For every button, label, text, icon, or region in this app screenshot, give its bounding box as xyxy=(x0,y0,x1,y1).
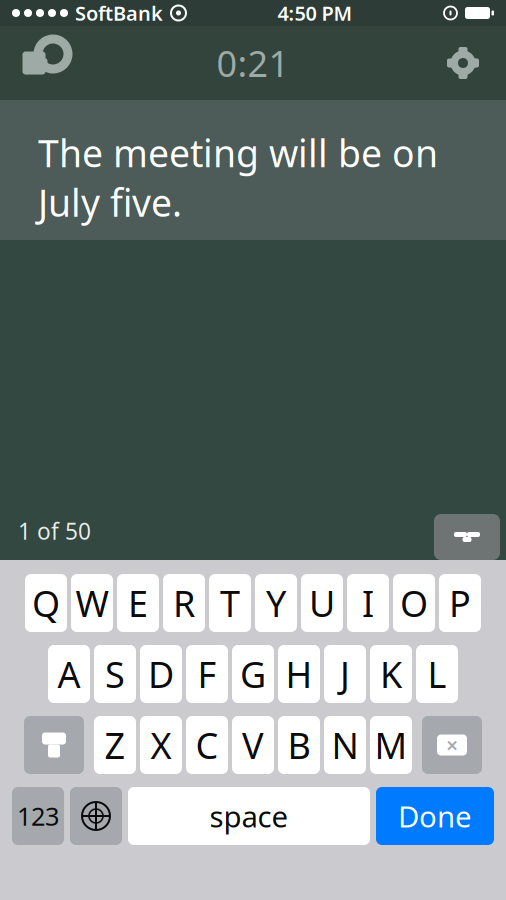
button[interactable]: Undo xyxy=(0,26,86,100)
staticText: M xyxy=(374,721,407,769)
button[interactable]: L xyxy=(416,645,458,703)
button[interactable]: H xyxy=(278,645,320,703)
staticText: I xyxy=(362,579,374,627)
staticText: SoftBank xyxy=(75,0,163,26)
button[interactable]: K xyxy=(370,645,412,703)
button[interactable]: Settings xyxy=(420,26,506,100)
button[interactable]: 123 xyxy=(12,787,64,845)
staticText: J xyxy=(340,650,350,698)
staticText: Y xyxy=(266,579,286,627)
staticText: W xyxy=(75,579,108,627)
staticText: S xyxy=(105,650,125,698)
button[interactable]: Shift xyxy=(24,716,84,774)
staticText: Done xyxy=(398,796,472,835)
staticText: 0:21 xyxy=(216,39,289,87)
button[interactable]: Next keyboard xyxy=(70,787,122,845)
staticText: The meeting will be on July five. xyxy=(38,128,438,227)
staticText: 123 xyxy=(17,799,59,833)
staticText: E xyxy=(128,579,148,627)
staticText: B xyxy=(287,721,310,769)
button[interactable]: D xyxy=(140,645,182,703)
staticText: 1 of 50 xyxy=(18,516,91,546)
button[interactable]: C xyxy=(186,716,228,774)
staticText: V xyxy=(242,721,264,769)
button[interactable]: Z xyxy=(94,716,136,774)
staticText: H xyxy=(285,650,312,698)
staticText: Z xyxy=(104,721,125,769)
staticText: C xyxy=(195,721,218,769)
button[interactable]: E xyxy=(117,574,159,632)
staticText: Q xyxy=(32,579,60,627)
button[interactable]: T xyxy=(209,574,251,632)
staticText: F xyxy=(197,650,216,698)
button[interactable]: F xyxy=(186,645,228,703)
staticText: N xyxy=(331,721,358,769)
button[interactable]: Done xyxy=(376,787,494,845)
staticText: D xyxy=(148,650,174,698)
staticText: G xyxy=(240,650,266,698)
button[interactable]: S xyxy=(94,645,136,703)
staticText: R xyxy=(173,579,195,627)
button[interactable]: W xyxy=(71,574,113,632)
button[interactable]: I xyxy=(347,574,389,632)
button[interactable]: Q xyxy=(25,574,67,632)
button[interactable]: Hide keyboard xyxy=(434,514,500,560)
button[interactable]: X xyxy=(140,716,182,774)
staticText: L xyxy=(427,650,446,698)
staticText: × xyxy=(446,731,458,759)
button[interactable]: V xyxy=(232,716,274,774)
button[interactable]: A xyxy=(48,645,90,703)
staticText: K xyxy=(380,650,402,698)
button[interactable]: B xyxy=(278,716,320,774)
button[interactable]: Delete xyxy=(422,716,482,774)
button[interactable]: space xyxy=(128,787,370,845)
staticText: P xyxy=(449,579,471,627)
button[interactable]: O xyxy=(393,574,435,632)
button[interactable]: G xyxy=(232,645,274,703)
button[interactable]: M xyxy=(370,716,412,774)
button[interactable]: Y xyxy=(255,574,297,632)
staticText: X xyxy=(150,721,171,769)
staticText: O xyxy=(400,579,428,627)
staticText: 4:50 PM xyxy=(277,0,352,26)
staticText: A xyxy=(57,650,80,698)
button[interactable]: J xyxy=(324,645,366,703)
button[interactable]: R xyxy=(163,574,205,632)
button[interactable]: P xyxy=(439,574,481,632)
staticText: T xyxy=(220,579,240,627)
button[interactable]: U xyxy=(301,574,343,632)
staticText: U xyxy=(309,579,335,627)
staticText: space xyxy=(209,796,288,835)
button[interactable]: N xyxy=(324,716,366,774)
